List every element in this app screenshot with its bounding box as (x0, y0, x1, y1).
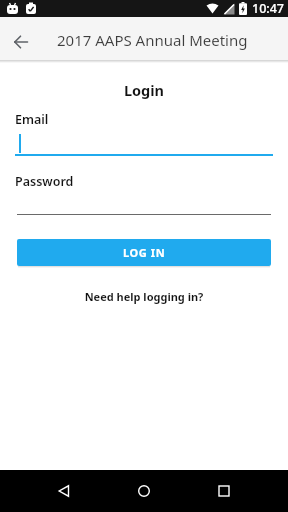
button[interactable] (204, 470, 244, 512)
staticText: Password (15, 173, 74, 190)
button[interactable]: LOG IN (17, 239, 271, 266)
staticText: Email (15, 111, 49, 128)
staticText: 10:47 (252, 0, 285, 17)
button[interactable] (17, 190, 271, 215)
staticText: Login (0, 80, 288, 100)
button[interactable] (0, 17, 42, 60)
button[interactable] (124, 470, 164, 512)
staticText: 2017 AAPS Annual Meeting (57, 30, 248, 50)
staticText: LOG IN (123, 245, 166, 260)
button[interactable] (15, 128, 273, 156)
button[interactable]: Need help logging in? (0, 289, 288, 304)
button[interactable] (44, 470, 84, 512)
